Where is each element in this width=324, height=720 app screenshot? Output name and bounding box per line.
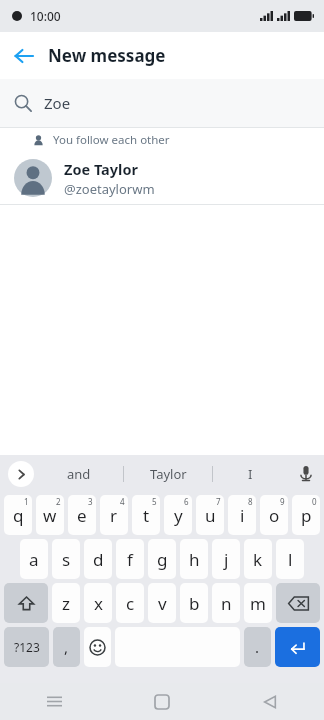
staticText: g	[157, 548, 168, 571]
staticText: v	[158, 592, 167, 615]
button[interactable]: j	[212, 539, 240, 579]
staticText: 9	[280, 496, 285, 507]
staticText: o	[269, 504, 280, 527]
staticText: 0	[312, 496, 317, 507]
staticText: New message	[48, 44, 166, 67]
staticText: w	[43, 504, 57, 527]
button[interactable]: t	[132, 495, 160, 535]
button[interactable]: b	[180, 583, 208, 623]
button[interactable]: Emoji	[84, 627, 111, 667]
button[interactable]: Zoe	[0, 79, 324, 127]
button[interactable]: I	[213, 455, 288, 493]
button[interactable]: Back	[0, 32, 48, 79]
staticText: r	[110, 504, 118, 527]
staticText: j	[224, 548, 229, 571]
staticText: t	[143, 504, 150, 527]
button[interactable]: v	[148, 583, 176, 623]
button[interactable]: z	[52, 583, 80, 623]
button[interactable]: Taylor	[124, 455, 212, 493]
staticText: k	[253, 548, 263, 571]
button[interactable]: Back	[216, 683, 324, 720]
staticText: ?123	[14, 639, 40, 655]
staticText: h	[189, 548, 200, 571]
button[interactable]: Recents	[0, 683, 108, 720]
staticText: 5	[152, 496, 157, 507]
button[interactable]: c	[116, 583, 144, 623]
button[interactable]: ,	[53, 627, 80, 667]
staticText: p	[301, 504, 312, 527]
button[interactable]: x	[84, 583, 112, 623]
staticText: q	[13, 504, 24, 527]
staticText: 4	[120, 496, 125, 507]
button[interactable]: Enter	[275, 627, 320, 667]
staticText: b	[189, 592, 200, 615]
staticText: u	[205, 504, 216, 527]
staticText: e	[77, 504, 87, 527]
button[interactable]: ?123	[4, 627, 49, 667]
button[interactable]: and	[34, 455, 123, 493]
staticText: i	[240, 504, 245, 527]
staticText: Zoe	[44, 93, 71, 113]
staticText: I	[248, 465, 253, 483]
button[interactable]: .	[244, 627, 271, 667]
staticText: f	[127, 548, 133, 571]
button[interactable]: More suggestions	[8, 461, 34, 487]
staticText: z	[62, 592, 70, 615]
button[interactable]: o	[260, 495, 288, 535]
button[interactable]: s	[52, 539, 80, 579]
button[interactable]: d	[84, 539, 112, 579]
staticText: s	[62, 548, 71, 571]
staticText: @zoetaylorwm	[64, 180, 155, 198]
staticText: n	[221, 592, 232, 615]
staticText: c	[126, 592, 135, 615]
button[interactable]: f	[116, 539, 144, 579]
button[interactable]: g	[148, 539, 176, 579]
button[interactable]: a	[20, 539, 48, 579]
staticText: m	[250, 592, 266, 615]
staticText: 8	[248, 496, 253, 507]
button[interactable]: n	[212, 583, 240, 623]
staticText: 3	[88, 496, 93, 507]
staticText: d	[93, 548, 104, 571]
staticText: l	[288, 548, 293, 571]
button[interactable]: k	[244, 539, 272, 579]
button[interactable]: Backspace	[276, 583, 320, 623]
staticText: and	[67, 465, 91, 483]
staticText: 7	[216, 496, 221, 507]
staticText: y	[174, 504, 183, 527]
staticText: ,	[64, 637, 69, 657]
button[interactable]: y	[164, 495, 192, 535]
button[interactable]: q	[4, 495, 32, 535]
staticText: You follow each other	[53, 132, 170, 148]
staticText: .	[255, 637, 260, 657]
button[interactable]: e	[68, 495, 96, 535]
staticText: a	[29, 548, 39, 571]
staticText: Zoe Taylor	[64, 159, 138, 179]
button[interactable]: w	[36, 495, 64, 535]
button[interactable]: Voice input	[288, 455, 324, 493]
staticText: 2	[56, 496, 61, 507]
button[interactable]: Zoe Taylor	[0, 152, 324, 204]
button[interactable]: h	[180, 539, 208, 579]
button[interactable]: Shift	[4, 583, 48, 623]
staticText: Taylor	[150, 465, 187, 483]
staticText: 6	[184, 496, 189, 507]
button[interactable]: u	[196, 495, 224, 535]
button[interactable]: p	[292, 495, 320, 535]
staticText: 1	[24, 496, 29, 507]
button[interactable]: i	[228, 495, 256, 535]
button[interactable]: Home	[108, 683, 216, 720]
button[interactable]: l	[276, 539, 304, 579]
staticText: x	[94, 592, 103, 615]
button[interactable]: r	[100, 495, 128, 535]
button[interactable]: m	[244, 583, 272, 623]
staticText: 10:00	[30, 8, 61, 24]
